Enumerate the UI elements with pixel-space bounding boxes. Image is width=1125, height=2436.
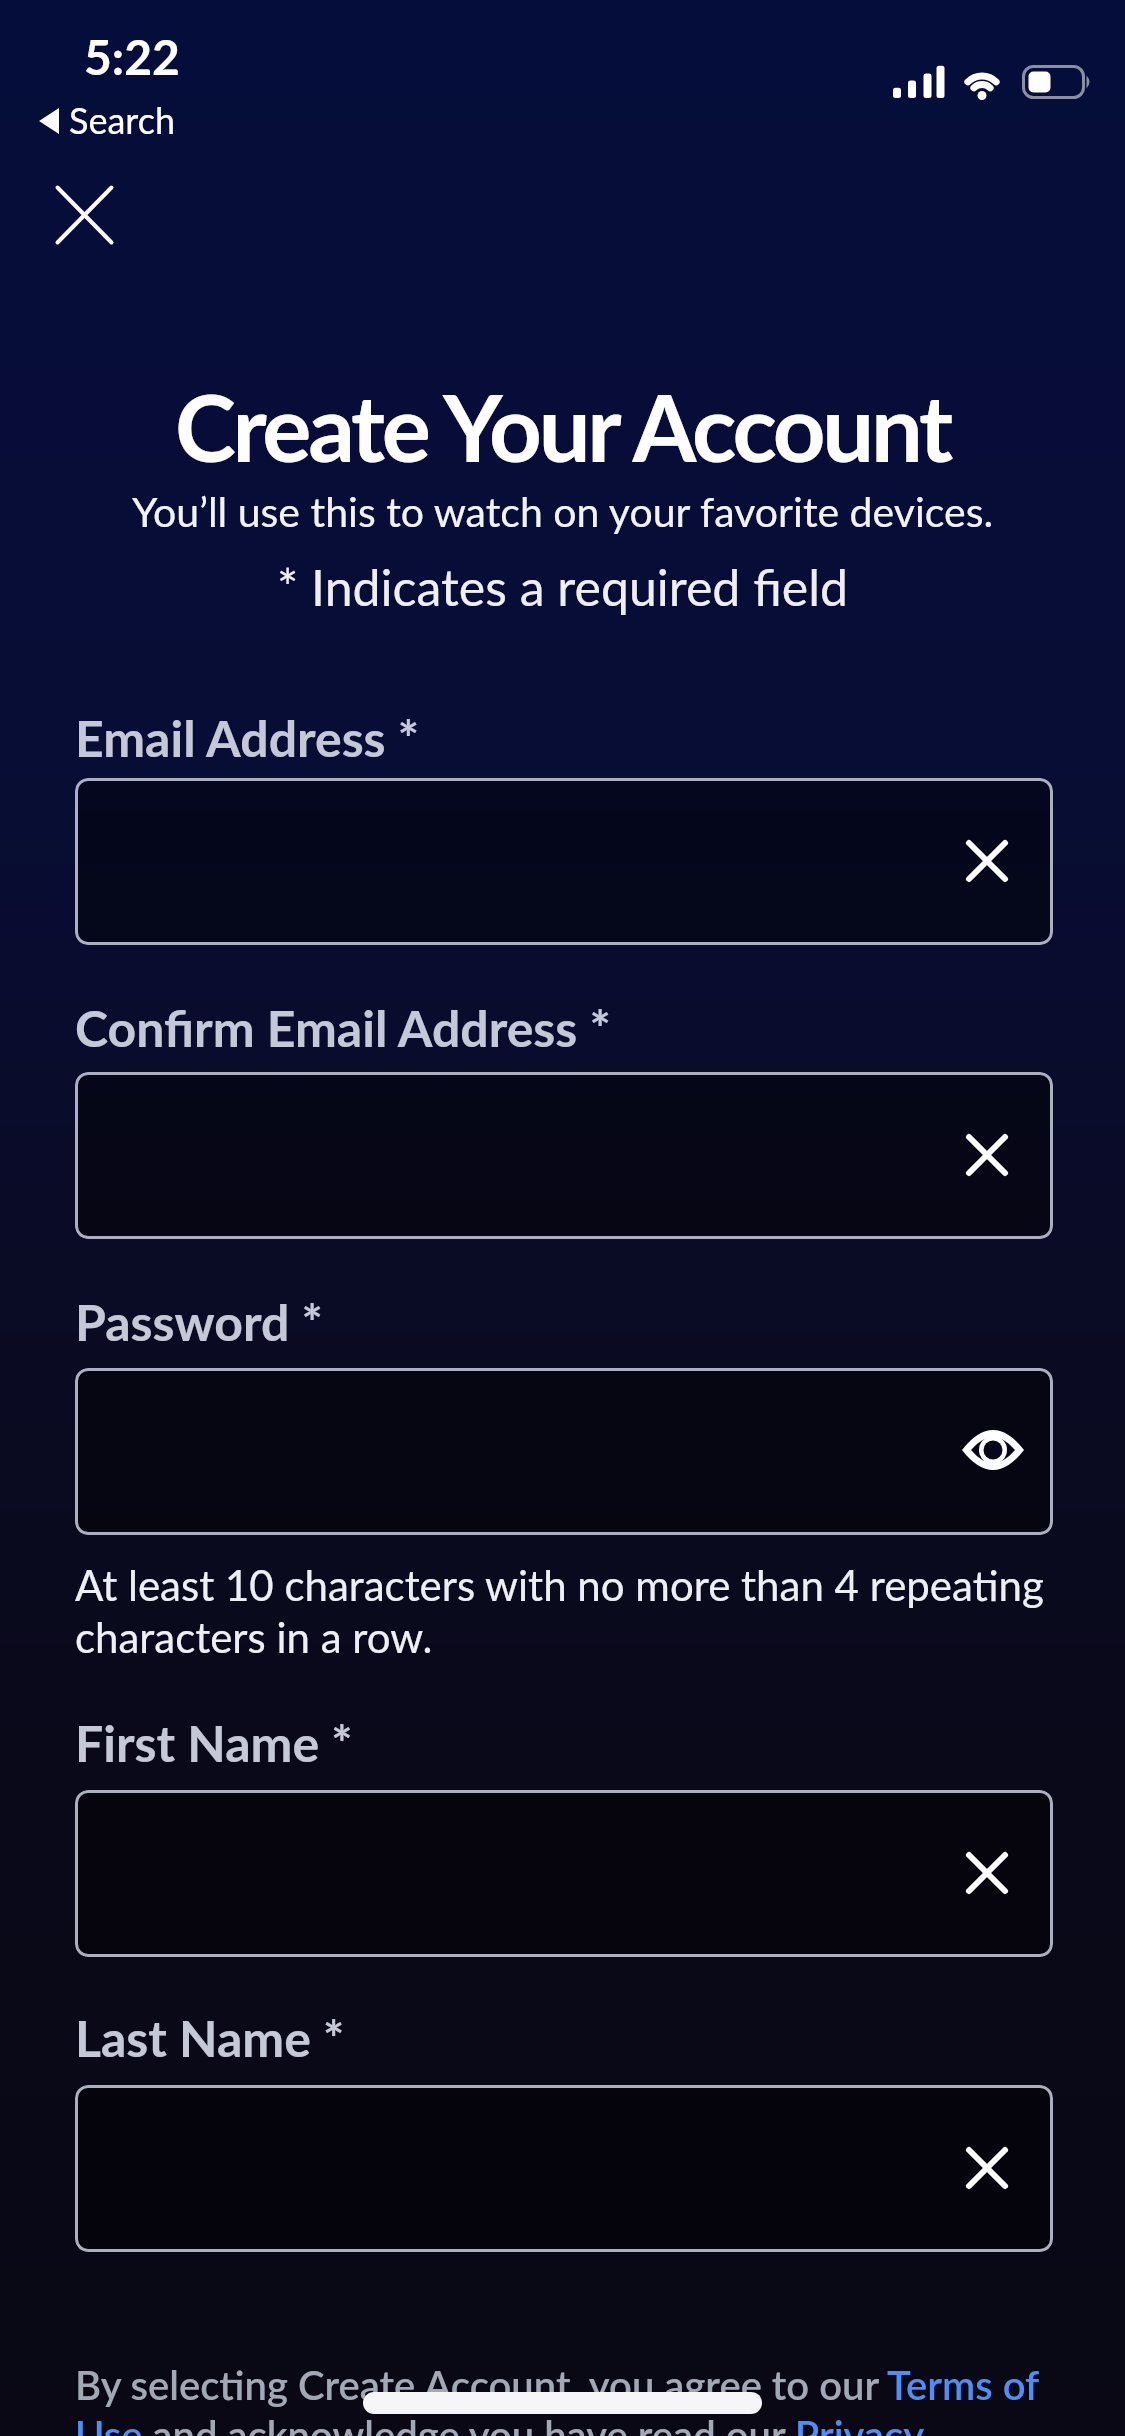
staticText: Create Your Account xyxy=(0,371,1125,481)
staticText: You’ll use this to watch on your favorit… xyxy=(0,487,1125,536)
staticText: * Indicates a required field xyxy=(0,557,1125,617)
staticText: Search xyxy=(69,98,175,141)
staticText: Password * xyxy=(75,1292,323,1352)
button[interactable] xyxy=(75,778,1053,945)
button[interactable]: Use and acknowledge you have read our Pr… xyxy=(75,2411,925,2436)
button[interactable]: By selecting Create Account, you agree t… xyxy=(75,2361,1040,2409)
button[interactable] xyxy=(75,2085,1053,2252)
button[interactable] xyxy=(75,1072,1053,1239)
button[interactable] xyxy=(75,1790,1053,1957)
staticText: 5:22 xyxy=(84,28,180,86)
staticText: Confirm Email Address * xyxy=(75,998,611,1058)
staticText: Email Address * xyxy=(75,708,419,768)
staticText: At least 10 characters with no more than… xyxy=(75,1560,1044,1662)
staticText: First Name * xyxy=(75,1713,353,1773)
button[interactable] xyxy=(75,1368,1053,1535)
button[interactable] xyxy=(42,172,128,258)
staticText: Last Name * xyxy=(75,2008,345,2068)
